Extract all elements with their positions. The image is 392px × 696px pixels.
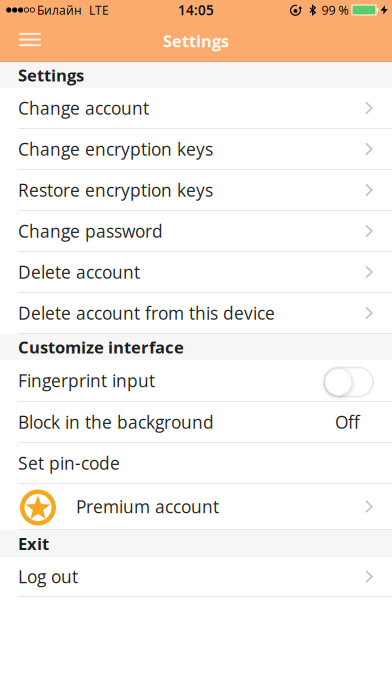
staticText: 14:05 — [178, 1, 214, 19]
staticText: Delete account from this device — [18, 301, 275, 325]
button[interactable]: Change password — [0, 211, 392, 252]
staticText: Block in the background — [18, 410, 214, 434]
button[interactable]: Delete account from this device — [0, 293, 392, 334]
button[interactable]: Change encryption keys — [0, 129, 392, 170]
button[interactable]: Log out — [0, 557, 392, 597]
button[interactable]: Restore encryption keys — [0, 170, 392, 211]
staticText: Settings — [163, 30, 229, 52]
staticText: Customize interface — [18, 336, 184, 358]
staticText: Premium account — [76, 495, 219, 518]
staticText: Delete account — [18, 260, 140, 284]
staticText: Off — [335, 410, 360, 434]
button[interactable]: Change account — [0, 88, 392, 129]
button[interactable]: Delete account — [0, 252, 392, 293]
staticText: Fingerprint input — [18, 369, 155, 392]
staticText: Settings — [18, 64, 84, 86]
button[interactable]: Set pin-code — [0, 443, 392, 484]
button[interactable]: Premium account — [0, 484, 392, 530]
staticText: Change password — [18, 219, 163, 243]
staticText: Change account — [18, 96, 149, 120]
button[interactable]: Block in the background — [0, 402, 392, 443]
staticText: Exit — [18, 532, 49, 555]
button[interactable]: Menu — [0, 22, 41, 60]
staticText: Set pin-code — [18, 451, 120, 475]
staticText: LTE — [89, 2, 109, 18]
staticText: Change encryption keys — [18, 137, 213, 161]
staticText: Restore encryption keys — [18, 178, 213, 202]
staticText: Билайн — [37, 2, 82, 18]
staticText: Log out — [18, 565, 78, 588]
staticText: 99 % — [321, 1, 348, 18]
button[interactable]: Fingerprint input — [0, 360, 392, 402]
